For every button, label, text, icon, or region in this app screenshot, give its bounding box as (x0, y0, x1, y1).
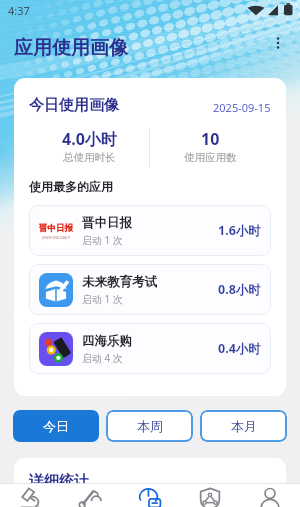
staticText: 未来教育考试 (82, 274, 157, 290)
button[interactable]: Automation (60, 484, 120, 507)
staticText: 本周 (137, 418, 163, 434)
staticText: 晋中日报 (39, 223, 73, 234)
staticText: 今日使用画像 (29, 96, 119, 115)
staticText: 详细统计 (29, 472, 89, 491)
staticText: 使用应用数 (184, 151, 237, 164)
button[interactable]: 未来教育考试 (29, 264, 271, 315)
button[interactable]: Discover (0, 484, 60, 507)
staticText: 0.8小时 (218, 281, 261, 298)
staticText: 启动 1 次 (82, 233, 123, 247)
button[interactable]: 本月 (200, 410, 287, 442)
staticText: 今日 (43, 418, 69, 434)
staticText: 10 (201, 128, 220, 150)
staticText: 启动 4 次 (82, 351, 123, 365)
staticText: 4:37 (8, 3, 30, 18)
staticText: 使用最多的应用 (29, 179, 113, 194)
button[interactable]: 晋中日报 (29, 205, 271, 256)
staticText: 1.6小时 (218, 222, 261, 239)
staticText: 2025-09-15 (213, 100, 271, 115)
staticText: 0.4小时 (218, 340, 261, 357)
button[interactable]: Security (180, 484, 240, 507)
staticText: 晋中日报 (82, 215, 132, 231)
staticText: 启动 1 次 (82, 292, 123, 306)
button[interactable]: 四海乐购 (29, 323, 271, 374)
button[interactable]: More options (264, 29, 292, 57)
button[interactable]: Profile (240, 484, 300, 507)
staticText: 总使用时长 (63, 151, 116, 164)
button[interactable]: 今日 (13, 410, 99, 442)
staticText: 本月 (231, 418, 257, 434)
staticText: JINZHONG DAILY (42, 235, 70, 240)
staticText: 四海乐购 (82, 333, 132, 349)
button[interactable]: Statistics (120, 484, 180, 507)
button[interactable]: 本周 (106, 410, 193, 442)
staticText: 应用使用画像 (14, 36, 128, 60)
staticText: 4.0小时 (62, 128, 117, 150)
